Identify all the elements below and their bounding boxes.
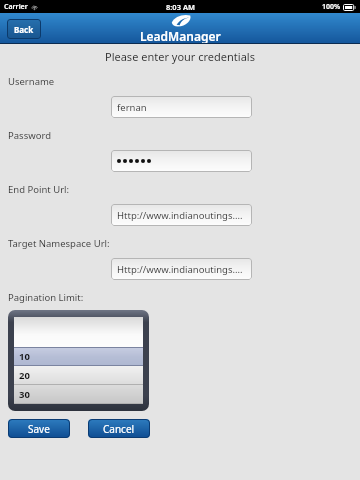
button[interactable]: fernan	[111, 96, 252, 118]
button[interactable]: Pagination limit picker	[8, 310, 149, 411]
staticText: fernan	[117, 101, 147, 114]
button[interactable]: Http://www.indianoutings.com…	[111, 204, 252, 226]
button[interactable]: Save	[8, 419, 70, 438]
staticText: Http://www.indianoutings.com…	[117, 263, 246, 276]
staticText: Back	[14, 24, 34, 35]
staticText: Password	[8, 129, 51, 142]
button[interactable]: Back	[7, 19, 41, 39]
staticText: Please enter your credentials	[105, 49, 255, 64]
staticText: Pagination Limit:	[8, 291, 84, 304]
staticText: 30	[19, 388, 30, 401]
staticText: End Point Url:	[8, 183, 70, 196]
button[interactable]: Http://www.indianoutings.com…	[111, 258, 252, 280]
staticText: Http://www.indianoutings.com…	[117, 209, 246, 222]
staticText: 100%	[322, 2, 341, 12]
staticText: LeadManager	[140, 28, 221, 44]
button[interactable]	[111, 150, 252, 172]
button[interactable]: Cancel	[88, 419, 150, 438]
staticText: 20	[19, 369, 30, 382]
staticText: 10	[19, 350, 30, 363]
staticText: Username	[8, 75, 55, 88]
staticText: Carrier	[4, 2, 28, 12]
staticText: Cancel	[103, 422, 135, 436]
staticText: Save	[28, 422, 50, 436]
staticText: Target Namespace Url:	[8, 237, 110, 250]
staticText: 8:03 AM	[166, 2, 195, 12]
